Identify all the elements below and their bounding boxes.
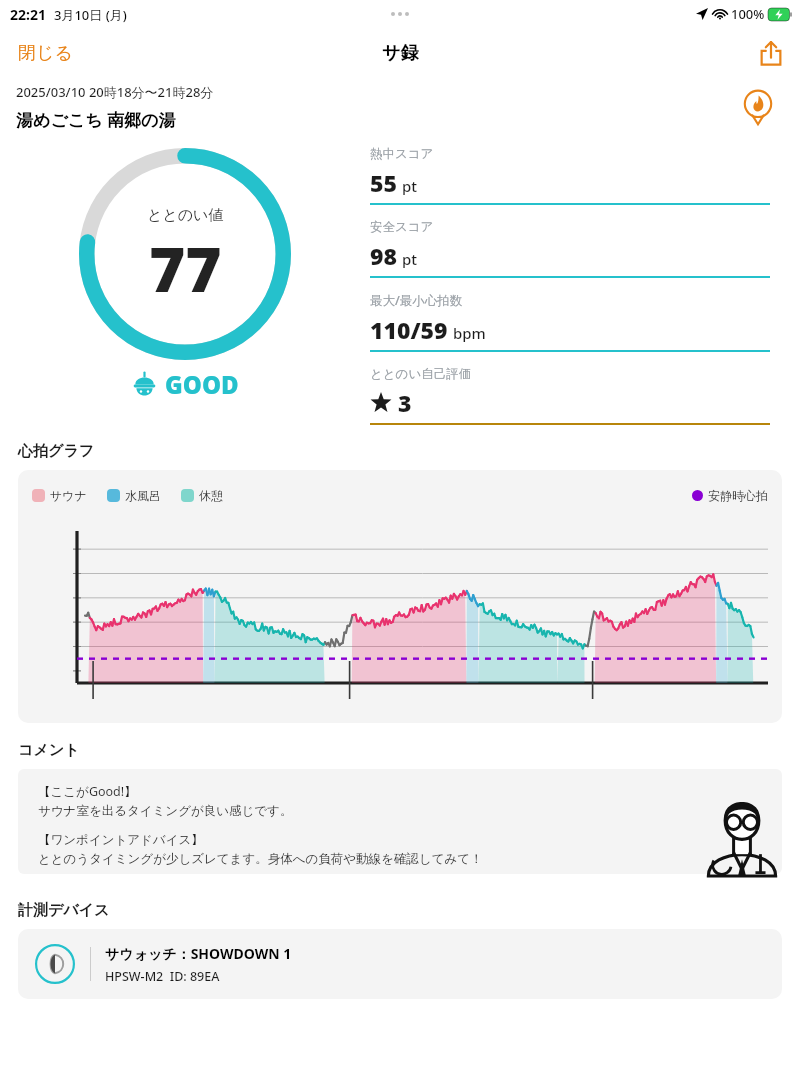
staticText: 熱中スコア (370, 146, 434, 162)
staticText: HPSW-M2 ID: 89EA (105, 968, 220, 985)
button[interactable]: Share (742, 34, 800, 72)
staticText: サウナ (50, 488, 87, 503)
staticText: 100% (731, 5, 765, 23)
staticText: pt (402, 249, 418, 269)
staticText: 22:21 (10, 5, 46, 24)
staticText: 閉じる (18, 42, 73, 65)
staticText: 【ここがGood!】 (38, 783, 137, 800)
staticText: 98 (370, 240, 397, 271)
staticText: 水風呂 (125, 488, 161, 503)
staticText: 心拍グラフ (18, 442, 95, 461)
staticText: サウナ室を出るタイミングが良い感じです。 (38, 803, 293, 819)
staticText: サウォッチ：SHOWDOWN 1 (105, 944, 292, 963)
staticText: 計測デバイス (18, 901, 110, 920)
staticText: ととのい値 (147, 206, 224, 225)
staticText: 3 (398, 387, 412, 418)
staticText: 休憩 (199, 488, 223, 503)
staticText: 55 (370, 167, 397, 198)
staticText: 安全スコア (370, 219, 434, 235)
staticText: GOOD (165, 368, 239, 401)
staticText: pt (402, 176, 418, 196)
staticText: 3月10日 (月) (54, 6, 127, 24)
staticText: ととのい自己評価 (370, 366, 472, 382)
button[interactable]: 閉じる (0, 34, 91, 73)
staticText: 最大/最小心拍数 (370, 292, 463, 309)
button[interactable]: サウォッチ：SHOWDOWN 1 (18, 929, 782, 999)
staticText: 77 (149, 226, 222, 310)
staticText: 110/59 (370, 314, 448, 345)
staticText: bpm (453, 323, 486, 343)
staticText: 安静時心拍 (708, 488, 768, 503)
staticText: サ録 (382, 42, 419, 65)
button[interactable]: Sauna location (738, 87, 778, 127)
staticText: 湯めごこち 南郷の湯 (16, 108, 176, 131)
staticText: 【ワンポイントアドバイス】 (38, 832, 204, 848)
staticText: ととのうタイミングが少しズレてます。身体への負荷や動線を確認してみて！ (38, 851, 483, 867)
staticText: コメント (18, 741, 80, 760)
staticText: 2025/03/10 20時18分〜21時28分 (16, 83, 214, 101)
